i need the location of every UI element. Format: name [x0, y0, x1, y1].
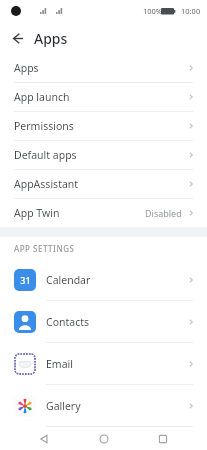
staticText: Disabled	[145, 207, 182, 219]
button[interactable]: Home	[89, 427, 119, 450]
button[interactable]: App Twin	[0, 199, 207, 227]
staticText: Contacts	[46, 315, 187, 329]
staticText: Permissions	[14, 119, 187, 133]
button[interactable]: Email	[0, 343, 207, 384]
button[interactable]: 31	[0, 259, 207, 300]
staticText: Gallery	[46, 399, 187, 413]
button[interactable]: Gallery	[0, 385, 207, 426]
staticText: App launch	[14, 90, 187, 104]
staticText: Calendar	[46, 273, 187, 287]
button[interactable]: App launch	[0, 83, 207, 111]
staticText: Email	[46, 357, 187, 371]
staticText: AppAssistant	[14, 177, 187, 191]
button[interactable]: AppAssistant	[0, 170, 207, 198]
staticText: APP SETTINGS	[14, 243, 75, 254]
staticText: 31	[20, 274, 31, 286]
button[interactable]: Back	[29, 427, 59, 450]
button[interactable]: Back	[0, 22, 34, 54]
staticText: Default apps	[14, 148, 187, 162]
staticText: 10:00	[181, 6, 201, 16]
staticText: 100%	[143, 6, 163, 16]
staticText: Apps	[14, 61, 187, 75]
button[interactable]: Contacts	[0, 301, 207, 342]
staticText: App Twin	[14, 206, 145, 220]
button[interactable]: Permissions	[0, 112, 207, 140]
button[interactable]: Default apps	[0, 141, 207, 169]
button[interactable]: Apps	[0, 54, 207, 82]
staticText: Apps	[34, 29, 68, 48]
button[interactable]: Recents	[148, 427, 178, 450]
